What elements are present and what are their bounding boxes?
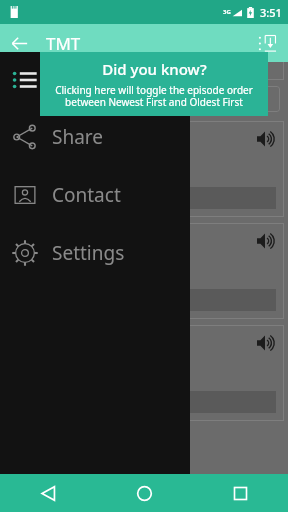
button[interactable]: Back: [0, 24, 38, 62]
button[interactable]: Toggle episode order: [0, 52, 190, 108]
staticText: Played: [124, 90, 165, 108]
button[interactable]: Share: [0, 108, 190, 166]
staticText: Settings: [52, 240, 125, 266]
staticText: Share: [52, 124, 104, 150]
staticText: Episode title word: [12, 127, 105, 142]
staticText: TMT: [46, 32, 81, 55]
other: Play: [256, 333, 276, 353]
button[interactable]: Did you know?: [40, 52, 268, 116]
button[interactable]: Download: [12, 391, 276, 413]
staticText: 3G: [223, 8, 231, 16]
staticText: Download: [118, 191, 171, 206]
button[interactable]: Download: [12, 187, 276, 209]
staticText: Clicking here will toggle the episode or…: [55, 83, 253, 109]
button[interactable]: Download all: [248, 24, 286, 62]
button[interactable]: Recents: [192, 474, 288, 512]
button[interactable]: Back: [0, 474, 96, 512]
other: Play: [256, 231, 276, 251]
button[interactable]: Home: [96, 474, 192, 512]
staticText: 3:51: [260, 5, 282, 20]
staticText: Did you know?: [102, 59, 207, 79]
other: Play: [256, 129, 276, 149]
button[interactable]: Download: [12, 289, 276, 311]
button[interactable]: Contact: [0, 166, 190, 224]
button[interactable]: Settings: [0, 224, 190, 282]
staticText: Episode title word: [12, 229, 105, 244]
staticText: Contact: [52, 182, 121, 208]
button[interactable]: Played: [8, 86, 280, 112]
